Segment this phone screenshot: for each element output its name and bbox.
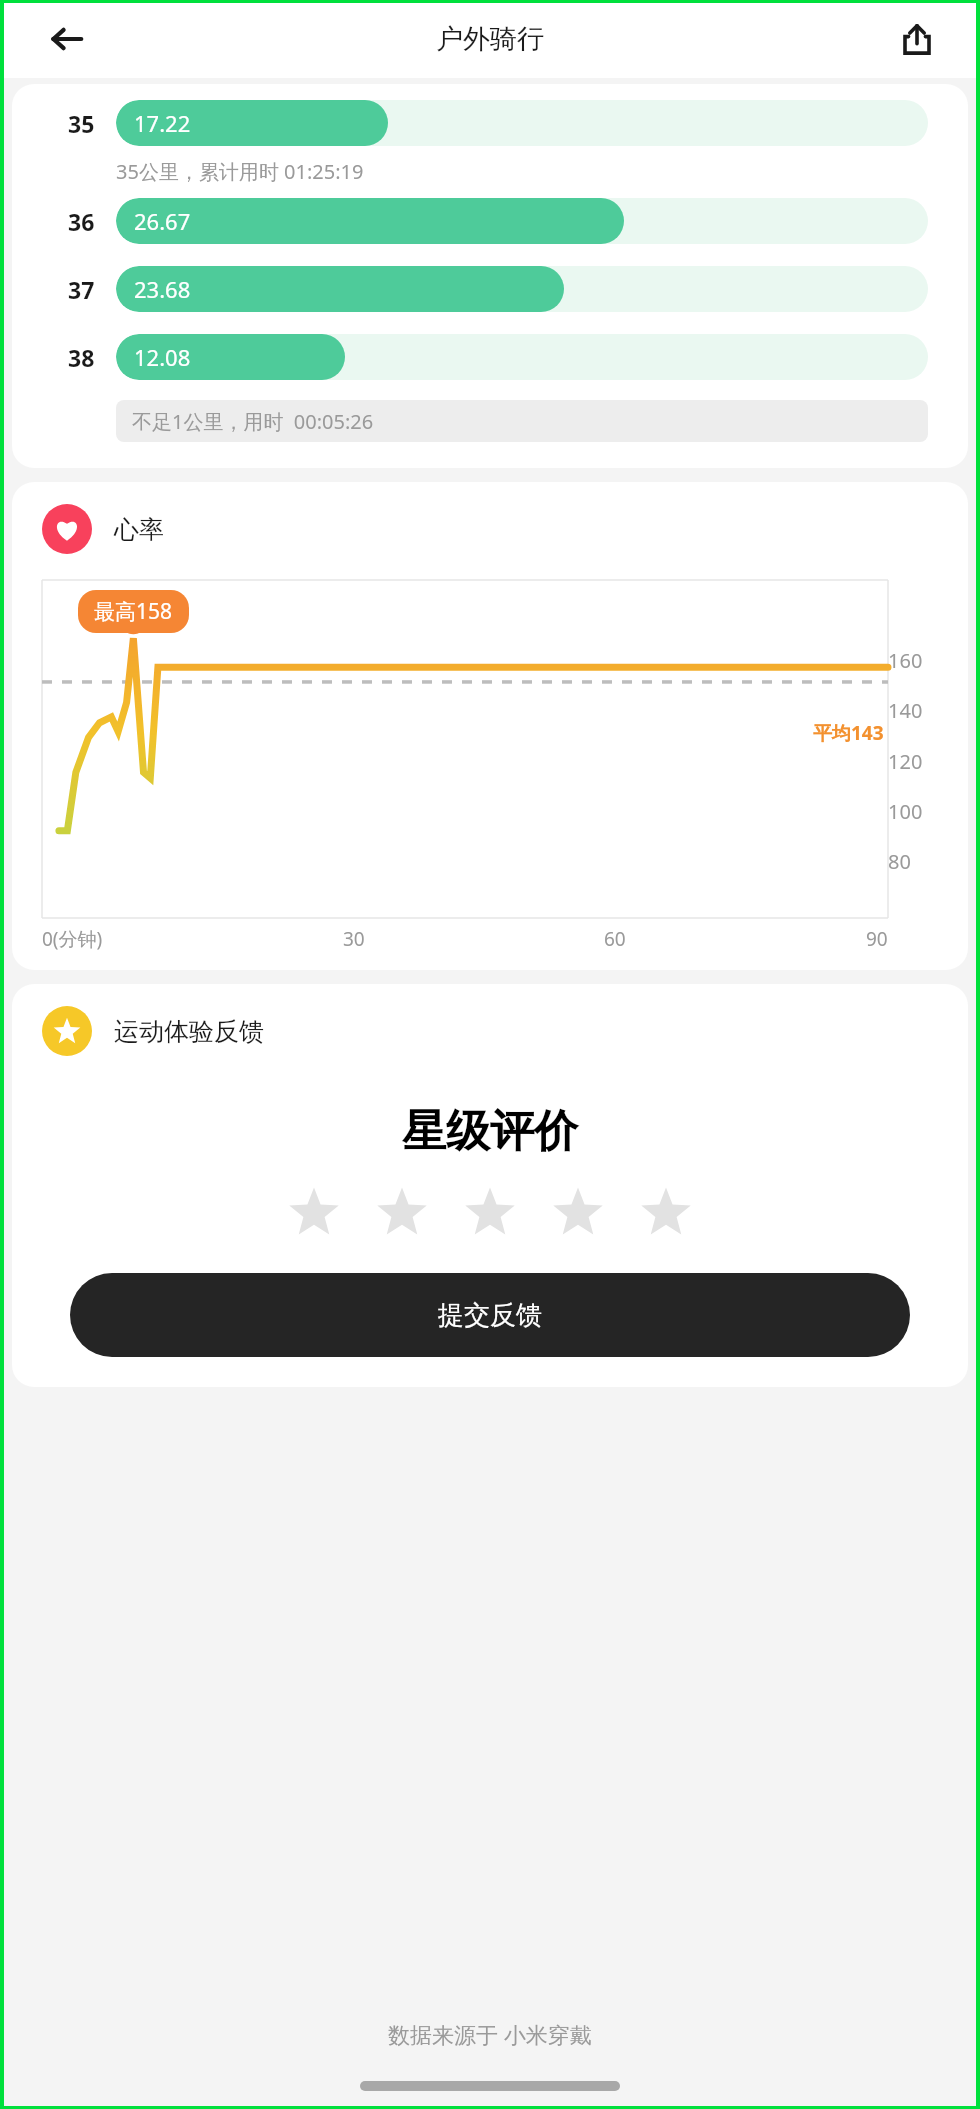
staticText: 140 <box>888 697 923 724</box>
staticText: 120 <box>888 748 923 775</box>
staticText: 90 <box>866 926 888 952</box>
staticText: 不足1公里，用时 00:05:26 <box>132 408 374 435</box>
button[interactable]: Share <box>894 16 940 62</box>
staticText: 35公里，累计用时 01:25:19 <box>116 158 364 185</box>
staticText: 平均143 <box>813 720 884 746</box>
staticText: 12.08 <box>134 342 191 372</box>
staticText: 38 <box>68 342 116 373</box>
staticText: 160 <box>888 647 923 674</box>
staticText: 运动体验反馈 <box>114 1016 264 1047</box>
staticText: 数据来源于 小米穿戴 <box>388 2019 592 2049</box>
staticText: 30 <box>343 926 365 952</box>
button[interactable] <box>375 1185 429 1239</box>
button[interactable]: 提交反馈 <box>70 1273 910 1357</box>
button[interactable] <box>551 1185 605 1239</box>
button[interactable] <box>463 1185 517 1239</box>
staticText: 26.67 <box>134 206 191 236</box>
staticText: 37 <box>68 274 116 305</box>
staticText: 户外骑行 <box>436 22 544 56</box>
button[interactable] <box>287 1185 341 1239</box>
staticText: 60 <box>604 926 626 952</box>
button[interactable]: Back <box>44 16 90 62</box>
staticText: 提交反馈 <box>438 1299 542 1332</box>
staticText: 17.22 <box>134 108 191 138</box>
staticText: 23.68 <box>134 274 191 304</box>
staticText: 星级评价 <box>402 1104 578 1159</box>
staticText: 36 <box>68 206 116 237</box>
staticText: 35 <box>68 108 116 139</box>
staticText: 80 <box>888 848 911 875</box>
staticText: 最高158 <box>94 597 173 626</box>
staticText: 0(分钟) <box>42 926 103 952</box>
staticText: 100 <box>888 798 923 825</box>
staticText: 心率 <box>114 514 164 545</box>
button[interactable] <box>639 1185 693 1239</box>
